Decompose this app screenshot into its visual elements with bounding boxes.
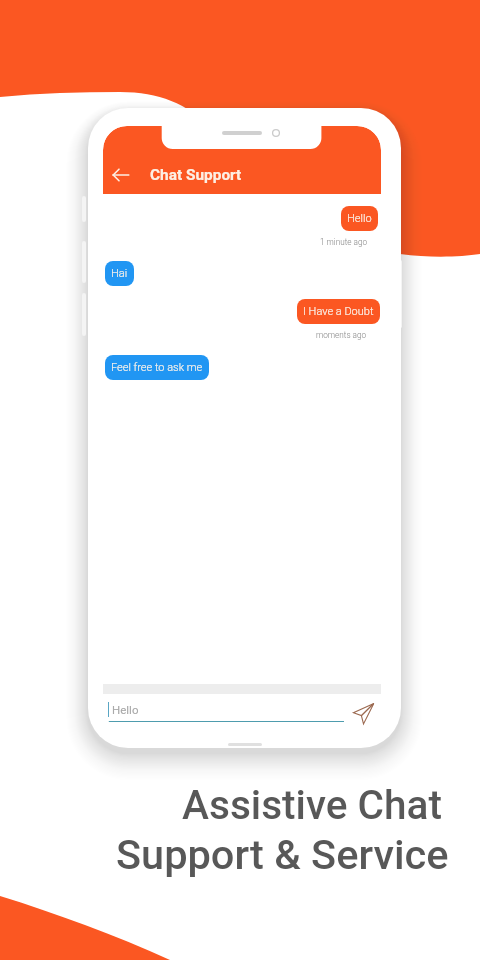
button[interactable]: Hai: [105, 261, 134, 286]
staticText: Chat Support: [150, 166, 242, 184]
staticText: 1 minute ago: [320, 237, 368, 247]
staticText: Hello: [112, 703, 139, 716]
staticText: I Have a Doubt: [303, 305, 374, 318]
button[interactable]: I Have a Doubt: [297, 299, 380, 324]
staticText: Hello: [347, 212, 372, 225]
button[interactable]: Feel free to ask me: [105, 355, 209, 380]
button[interactable]: Send: [352, 702, 374, 724]
button[interactable]: Hello: [341, 206, 378, 231]
staticText: moments ago: [316, 330, 367, 340]
button[interactable]: Back: [110, 164, 131, 185]
button[interactable]: Hello: [108, 701, 346, 718]
staticText: Feel free to ask me: [111, 361, 203, 374]
staticText: Support & Service: [116, 830, 449, 879]
staticText: Assistive Chat: [182, 781, 442, 828]
staticText: Hai: [111, 267, 128, 280]
